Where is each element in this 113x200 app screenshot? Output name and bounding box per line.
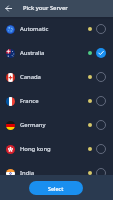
button[interactable]: Automatic xyxy=(0,17,113,41)
button[interactable]: France xyxy=(0,89,113,113)
button[interactable]: Select xyxy=(29,181,83,195)
staticText: Select xyxy=(48,185,64,192)
button[interactable]: Back xyxy=(0,0,17,17)
button[interactable]: Canada xyxy=(0,65,113,89)
staticText: Australia xyxy=(20,49,45,57)
button[interactable]: Hong kong xyxy=(0,137,113,161)
button[interactable]: Australia xyxy=(0,41,113,65)
staticText: France xyxy=(20,97,39,105)
staticText: Canada xyxy=(20,73,41,81)
staticText: Automatic xyxy=(20,25,49,33)
staticText: Pick your Server xyxy=(23,4,68,12)
staticText: India xyxy=(20,169,35,175)
button[interactable]: Germany xyxy=(0,113,113,137)
staticText: Hong kong xyxy=(20,145,51,153)
button[interactable]: India xyxy=(0,161,113,175)
staticText: Germany xyxy=(20,121,46,129)
